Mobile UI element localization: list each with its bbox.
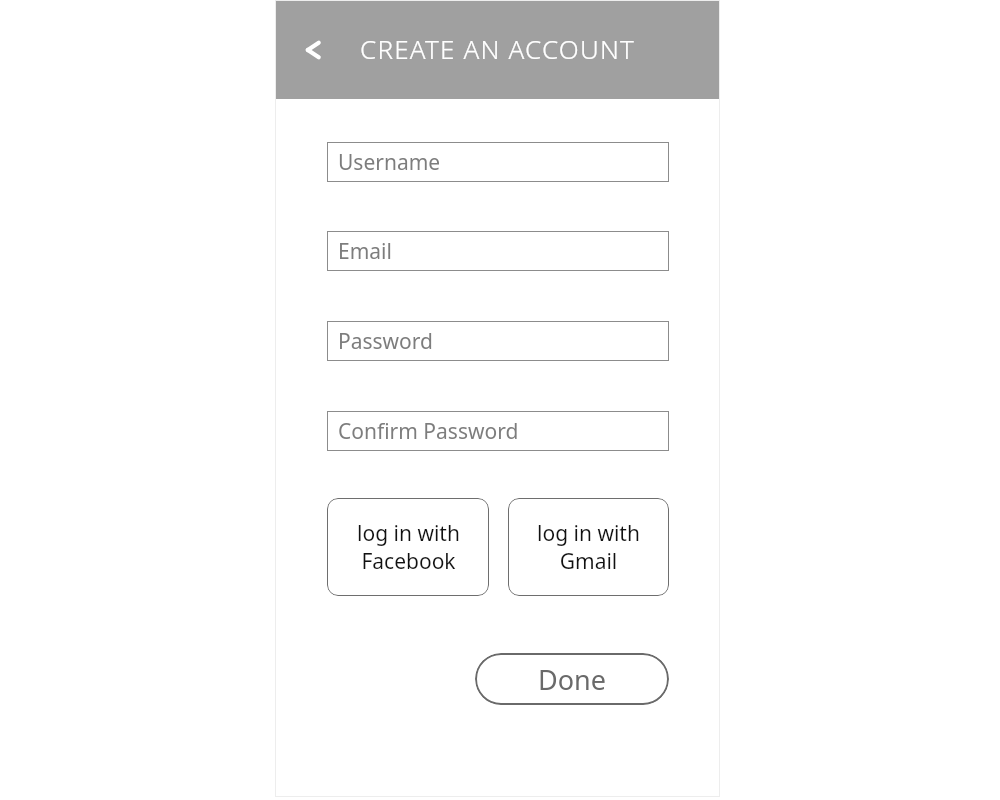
button[interactable]: log in with Facebook	[327, 498, 489, 596]
staticText: Password	[338, 327, 433, 356]
staticText: Confirm Password	[338, 417, 519, 446]
button[interactable]: Password	[327, 321, 669, 361]
staticText: Username	[338, 148, 441, 177]
staticText: Email	[338, 237, 392, 266]
button[interactable]: Confirm Password	[327, 411, 669, 451]
button[interactable]: Back	[289, 26, 337, 74]
button[interactable]: log in with Gmail	[508, 498, 669, 596]
staticText: Done	[538, 661, 606, 698]
button[interactable]: Email	[327, 231, 669, 271]
button[interactable]: Done	[475, 653, 669, 705]
staticText: CREATE AN ACCOUNT	[360, 31, 636, 66]
button[interactable]: Username	[327, 142, 669, 182]
staticText: log in with Facebook	[357, 519, 460, 575]
staticText: log in with Gmail	[537, 519, 640, 575]
